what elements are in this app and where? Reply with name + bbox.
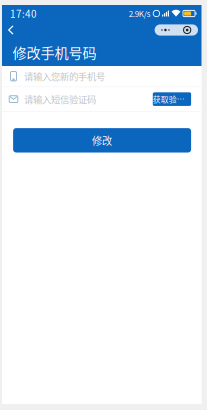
staticText: 修改手机号码 [12, 42, 96, 62]
button[interactable]: 获取验证码 [153, 92, 191, 106]
button[interactable]: Close [177, 24, 198, 36]
button[interactable]: 修改 [13, 128, 191, 152]
staticText: 获取验证码 [153, 93, 191, 105]
staticText: 2.9K/s [129, 8, 151, 19]
staticText: 17:40 [10, 6, 37, 21]
button[interactable]: Menu [155, 24, 176, 36]
staticText: 请输入短信验证码 [24, 92, 96, 106]
staticText: 修改 [92, 133, 112, 148]
staticText: 请输入您新的手机号 [24, 69, 105, 83]
button[interactable]: Back [2, 23, 22, 37]
